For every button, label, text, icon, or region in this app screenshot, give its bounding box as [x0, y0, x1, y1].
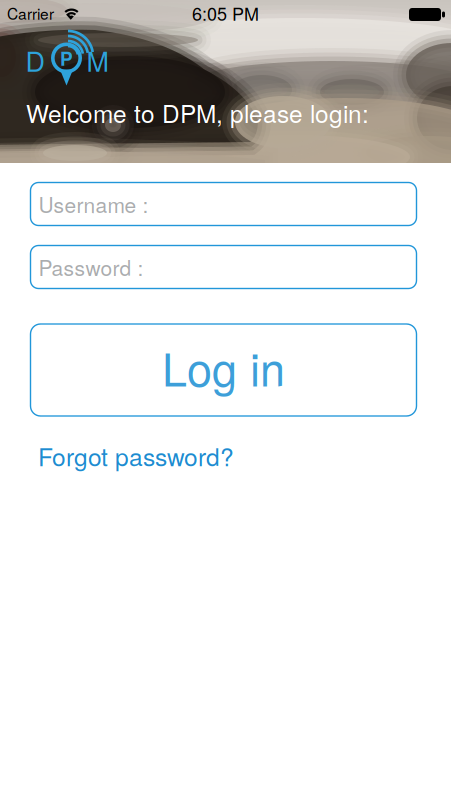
staticText: Username :: [38, 189, 148, 219]
staticText: P: [60, 44, 73, 72]
button[interactable]: Username :: [30, 182, 416, 225]
button[interactable]: Password :: [30, 245, 416, 288]
staticText: Welcome to DPM, please login:: [26, 95, 369, 130]
staticText: Carrier: [7, 2, 54, 24]
button[interactable]: Log in: [30, 324, 416, 416]
staticText: 6:05 PM: [192, 0, 259, 26]
staticText: Log in: [162, 335, 285, 399]
staticText: D: [25, 41, 44, 79]
staticText: Password :: [38, 252, 143, 282]
button[interactable]: Forgot password?: [0, 438, 451, 473]
staticText: M: [86, 41, 108, 79]
staticText: Forgot password?: [38, 438, 234, 473]
